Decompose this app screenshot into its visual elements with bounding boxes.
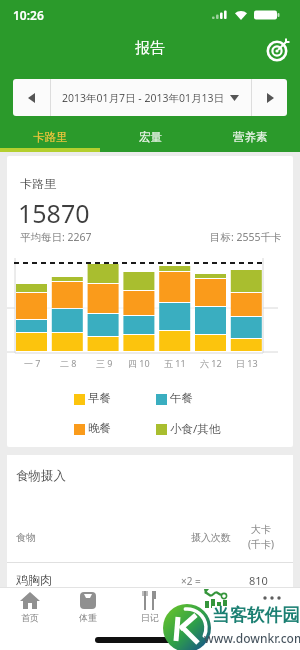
staticText: 摄入次数 (191, 531, 231, 544)
button[interactable] (262, 35, 294, 67)
staticText: 小食/其他 (170, 421, 221, 437)
staticText: 一 7 (24, 357, 41, 369)
staticText: 早餐 (88, 391, 111, 405)
staticText: 10:26 (13, 7, 44, 23)
button[interactable] (244, 588, 296, 628)
staticText: 日 13 (236, 357, 258, 369)
button[interactable] (51, 79, 251, 116)
staticText: 2013年01月7日 - 2013年01月13日 (62, 91, 224, 105)
staticText: 大卡 (千卡) (248, 523, 274, 551)
staticText: 卡路里 (33, 130, 68, 144)
staticText: www.downkr.com (204, 630, 300, 646)
staticText: 五 11 (164, 357, 186, 369)
staticText: 目标: 2555千卡 (210, 230, 282, 244)
button[interactable] (252, 79, 287, 116)
button[interactable]: 体重 (62, 588, 114, 628)
button[interactable] (190, 588, 240, 628)
staticText: 报告 (135, 39, 165, 58)
staticText: 鸡胸肉 (16, 572, 52, 587)
staticText: 四 10 (128, 357, 150, 369)
staticText: 卡路里 (20, 176, 56, 191)
staticText: 食物 (16, 531, 36, 544)
staticText: 晚餐 (88, 421, 111, 435)
staticText: 午餐 (170, 391, 193, 405)
staticText: 三 9 (96, 357, 113, 369)
button[interactable]: 日记 (124, 588, 176, 628)
staticText: 宏量 (139, 130, 162, 144)
staticText: ×2 = (181, 574, 201, 588)
button[interactable]: 首页 (4, 588, 56, 628)
staticText: 平均每日: 2267 (20, 230, 92, 244)
staticText: 二 8 (60, 357, 77, 369)
button[interactable]: 卡路里 (0, 122, 100, 152)
staticText: 营养素 (233, 130, 268, 144)
staticText: 体重 (79, 612, 97, 623)
staticText: 15870 (18, 196, 90, 230)
staticText: 当客软件园 (212, 604, 300, 626)
staticText: 日记 (141, 612, 159, 623)
button[interactable]: 宏量 (100, 122, 200, 152)
staticText: 六 12 (200, 357, 222, 369)
staticText: 首页 (21, 612, 39, 623)
button[interactable]: 鸡胸肉 (0, 564, 300, 587)
button[interactable] (13, 79, 50, 116)
staticText: 食物摄入 (16, 468, 66, 484)
button[interactable]: 营养素 (200, 122, 300, 152)
staticText: 810 (249, 573, 268, 588)
